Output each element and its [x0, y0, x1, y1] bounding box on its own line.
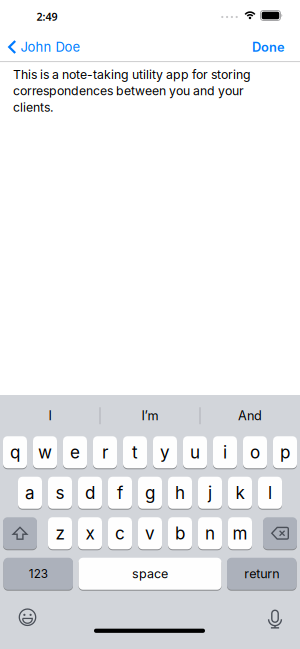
button[interactable]: Dictation — [267, 609, 282, 628]
staticText: f — [117, 482, 123, 503]
staticText: p — [280, 442, 290, 462]
staticText: y — [160, 442, 170, 462]
staticText: v — [145, 523, 155, 543]
button[interactable]: u — [183, 436, 207, 468]
staticText: n — [205, 523, 215, 543]
button[interactable]: space — [78, 558, 221, 590]
button[interactable]: return — [227, 558, 296, 590]
staticText: clients. — [13, 100, 54, 115]
staticText: And — [238, 408, 262, 423]
staticText: k — [235, 482, 244, 503]
staticText: u — [190, 442, 200, 462]
button[interactable]: Shift — [3, 517, 37, 549]
staticText: correspondences between you and your — [13, 83, 244, 98]
staticText: m — [232, 523, 247, 543]
button[interactable]: And — [200, 395, 300, 436]
button[interactable]: q — [3, 436, 27, 468]
staticText: w — [38, 442, 52, 462]
button[interactable]: z — [48, 517, 72, 549]
button[interactable]: r — [93, 436, 117, 468]
button[interactable]: y — [153, 436, 177, 468]
staticText: l — [268, 482, 272, 503]
staticText: a — [25, 482, 35, 503]
button[interactable]: e — [63, 436, 87, 468]
button[interactable]: d — [78, 477, 102, 509]
button[interactable]: j — [198, 477, 222, 509]
staticText: 2:49 — [36, 9, 57, 24]
staticText: John Doe — [20, 39, 80, 55]
staticText: z — [55, 523, 64, 543]
staticText: e — [70, 442, 80, 462]
staticText: x — [85, 523, 94, 543]
button[interactable]: l — [258, 477, 282, 509]
button[interactable]: k — [228, 477, 252, 509]
staticText: t — [132, 442, 138, 462]
staticText: s — [55, 482, 64, 503]
button[interactable]: b — [168, 517, 192, 549]
button[interactable]: Done — [252, 39, 300, 55]
staticText: This is a note-taking utility app for st… — [13, 67, 251, 82]
button[interactable]: I — [0, 395, 100, 436]
staticText: b — [175, 523, 185, 543]
button[interactable]: x — [78, 517, 102, 549]
button[interactable]: Back — [0, 39, 80, 55]
staticText: r — [102, 442, 108, 462]
staticText: d — [85, 482, 95, 503]
button[interactable]: f — [108, 477, 132, 509]
button[interactable]: o — [243, 436, 267, 468]
staticText: i — [223, 442, 227, 462]
staticText: I — [48, 408, 51, 423]
button[interactable]: t — [123, 436, 147, 468]
button[interactable]: c — [108, 517, 132, 549]
button[interactable]: m — [228, 517, 252, 549]
button[interactable]: I’m — [100, 395, 200, 436]
staticText: Done — [252, 39, 285, 55]
button[interactable]: v — [138, 517, 162, 549]
button[interactable]: Delete — [263, 517, 297, 549]
staticText: I’m — [141, 408, 158, 423]
staticText: h — [175, 482, 185, 503]
button[interactable]: n — [198, 517, 222, 549]
staticText: c — [115, 523, 125, 543]
staticText: return — [244, 566, 279, 581]
staticText: j — [208, 482, 212, 503]
staticText: space — [132, 566, 168, 581]
button[interactable]: w — [33, 436, 57, 468]
button[interactable]: Emoji — [18, 608, 36, 626]
staticText: g — [145, 482, 155, 503]
button[interactable]: Numbers — [3, 558, 73, 590]
staticText: q — [10, 442, 20, 462]
button[interactable]: g — [138, 477, 162, 509]
button[interactable]: h — [168, 477, 192, 509]
staticText: o — [250, 442, 260, 462]
button[interactable]: p — [273, 436, 297, 468]
staticText: 123 — [29, 567, 48, 581]
button[interactable]: s — [48, 477, 72, 509]
button[interactable]: a — [18, 477, 42, 509]
button[interactable]: i — [213, 436, 237, 468]
